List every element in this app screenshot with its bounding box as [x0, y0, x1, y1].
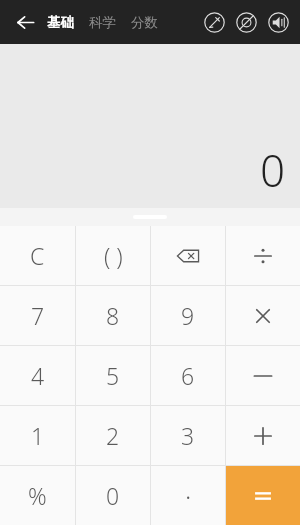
button[interactable]: 4: [0, 346, 75, 405]
button[interactable]: Multiply: [226, 286, 300, 345]
button[interactable]: 5: [76, 346, 150, 405]
button[interactable]: ·: [151, 466, 225, 525]
staticText: 0: [106, 480, 120, 511]
button[interactable]: Backspace: [151, 226, 225, 285]
staticText: 分数: [131, 14, 158, 31]
staticText: 6: [181, 360, 195, 391]
button[interactable]: Back: [10, 7, 40, 37]
staticText: 8: [106, 300, 120, 331]
button[interactable]: 2: [76, 406, 150, 465]
staticText: %: [28, 480, 47, 511]
button[interactable]: Theme: [230, 6, 262, 38]
button[interactable]: Edit: [198, 6, 230, 38]
staticText: 0: [259, 140, 285, 200]
staticText: 4: [31, 360, 45, 391]
button[interactable]: %: [0, 466, 75, 525]
button[interactable]: C: [0, 226, 75, 285]
button[interactable]: Equals: [226, 466, 300, 525]
staticText: 科学: [89, 14, 116, 31]
staticText: ( ): [104, 240, 123, 271]
button[interactable]: 6: [151, 346, 225, 405]
staticText: C: [30, 240, 45, 271]
staticText: 9: [181, 300, 195, 331]
button[interactable]: Sound: [262, 6, 294, 38]
button[interactable]: 科学: [87, 10, 118, 35]
button[interactable]: 8: [76, 286, 150, 345]
button[interactable]: 基础: [45, 10, 76, 35]
staticText: 2: [106, 420, 120, 451]
button[interactable]: 7: [0, 286, 75, 345]
button[interactable]: 分数: [129, 10, 160, 35]
button[interactable]: 1: [0, 406, 75, 465]
staticText: ·: [185, 478, 192, 513]
button[interactable]: Divide: [226, 226, 300, 285]
staticText: 基础: [47, 14, 74, 31]
staticText: 3: [181, 420, 195, 451]
staticText: 5: [106, 360, 120, 391]
button[interactable]: Plus: [226, 406, 300, 465]
button[interactable]: 9: [151, 286, 225, 345]
button[interactable]: ( ): [76, 226, 150, 285]
button[interactable]: Minus: [226, 346, 300, 405]
staticText: 7: [31, 300, 45, 331]
button[interactable]: 3: [151, 406, 225, 465]
staticText: 1: [31, 420, 45, 451]
button[interactable]: 0: [76, 466, 150, 525]
